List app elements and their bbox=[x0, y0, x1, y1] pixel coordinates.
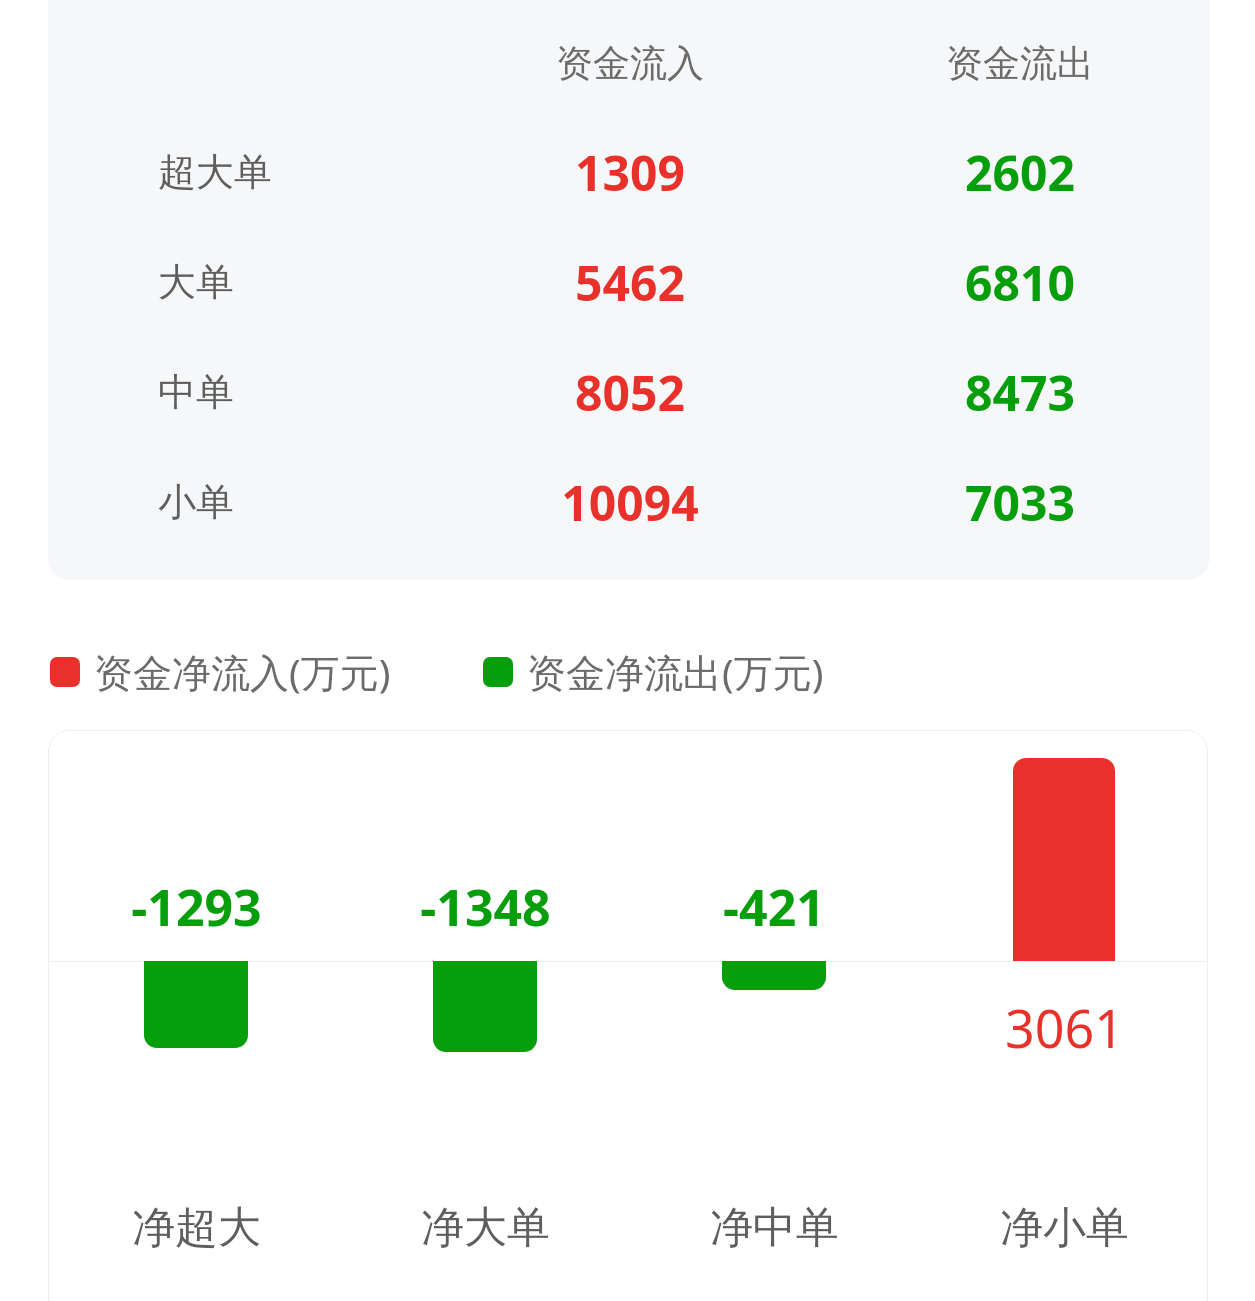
staticText: 大单 bbox=[158, 258, 234, 306]
button[interactable]: Net fund flow bar chart bbox=[48, 730, 1208, 1301]
staticText: 净中单 bbox=[710, 1201, 839, 1255]
staticText: 资金净流出(万元) bbox=[527, 645, 824, 698]
staticText: 净超大 bbox=[132, 1201, 261, 1255]
staticText: 资金净流入(万元) bbox=[94, 645, 391, 698]
staticText: 7033 bbox=[965, 470, 1075, 535]
staticText: -1348 bbox=[420, 873, 551, 941]
staticText: 10094 bbox=[561, 470, 699, 535]
staticText: 8473 bbox=[965, 360, 1075, 425]
staticText: -421 bbox=[723, 873, 825, 941]
staticText: 2602 bbox=[965, 140, 1075, 205]
staticText: 中单 bbox=[158, 368, 234, 416]
staticText: 8052 bbox=[575, 360, 685, 425]
staticText: 净大单 bbox=[421, 1201, 550, 1255]
button[interactable] bbox=[48, 0, 1210, 580]
staticText: 资金流出 bbox=[946, 40, 1094, 87]
staticText: 3061 bbox=[1005, 992, 1124, 1063]
staticText: 5462 bbox=[575, 250, 685, 315]
staticText: -1293 bbox=[131, 873, 262, 941]
staticText: 6810 bbox=[965, 250, 1075, 315]
button[interactable]: 资金净流入(万元) bbox=[50, 645, 391, 698]
staticText: 超大单 bbox=[158, 148, 272, 196]
staticText: 净小单 bbox=[1000, 1201, 1129, 1255]
staticText: 资金流入 bbox=[556, 40, 704, 87]
button[interactable]: 资金净流出(万元) bbox=[483, 645, 824, 698]
staticText: 小单 bbox=[158, 478, 234, 526]
staticText: 1309 bbox=[575, 140, 685, 205]
